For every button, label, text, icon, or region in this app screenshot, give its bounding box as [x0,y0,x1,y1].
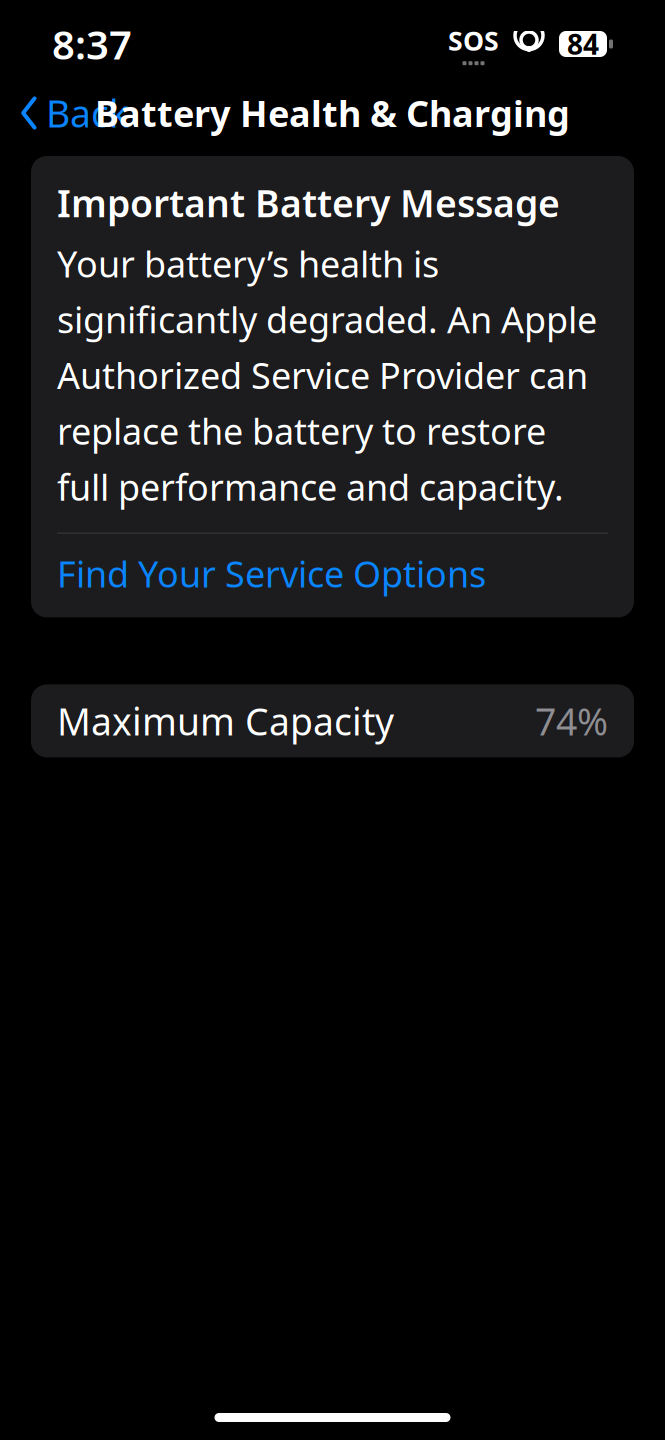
staticText: Battery Health & Charging [95,89,570,137]
staticText: Optimized Battery Charging [57,1322,375,1422]
staticText: SOS [448,23,499,58]
staticText: 84 [567,25,599,63]
staticText: Important Battery Message [57,178,560,228]
staticText: Maximum Capacity [57,696,394,746]
staticText: Back [46,88,129,138]
button[interactable]: Back [6,82,143,144]
staticText: Find Your Service Options [57,550,486,597]
button[interactable]: Find Your Service Options [57,534,608,613]
staticText: 74% [535,696,608,746]
staticText: Your battery’s health is significantly d… [57,240,597,511]
staticText: 8:37 [52,17,132,70]
